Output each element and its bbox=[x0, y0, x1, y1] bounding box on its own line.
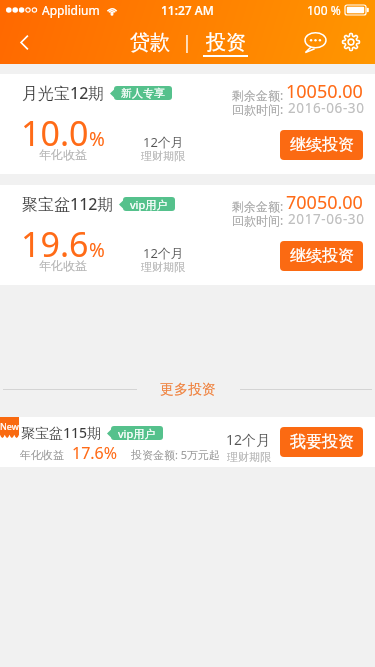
staticText: 2017-06-30 bbox=[288, 210, 365, 228]
staticText: 聚宝盆112期 bbox=[22, 193, 114, 215]
staticText: 理财期限 bbox=[141, 260, 185, 274]
staticText: 投资 bbox=[206, 30, 246, 55]
staticText: 11:27 AM bbox=[161, 2, 214, 18]
staticText: 12个月 bbox=[143, 244, 184, 262]
staticText: 2016-06-30 bbox=[288, 99, 365, 117]
staticText: 10050.00 bbox=[286, 79, 363, 104]
staticText: 年化收益 bbox=[39, 258, 87, 273]
button[interactable]: 月光宝12期 bbox=[0, 74, 375, 174]
button[interactable]: 贷款 bbox=[130, 29, 170, 54]
staticText: % bbox=[89, 237, 105, 263]
staticText: vip用户 bbox=[118, 426, 156, 440]
staticText: 12个月 bbox=[226, 430, 271, 449]
staticText: 剩余金额: bbox=[232, 87, 284, 103]
button[interactable]: 聚宝盆115期 bbox=[0, 417, 375, 467]
staticText: 聚宝盆115期 bbox=[21, 423, 102, 442]
button[interactable]: 我要投资 bbox=[280, 427, 363, 457]
staticText: % bbox=[89, 126, 105, 152]
staticText: 理财期限 bbox=[227, 450, 271, 464]
staticText: 新人专享 bbox=[121, 86, 165, 100]
button[interactable]: 继续投资 bbox=[280, 130, 363, 160]
staticText: 70050.00 bbox=[286, 190, 363, 215]
staticText: 投资金额: 5万元起 bbox=[131, 447, 221, 462]
button[interactable]: 继续投资 bbox=[280, 241, 363, 271]
staticText: | bbox=[182, 30, 192, 55]
staticText: 回款时间: bbox=[232, 212, 284, 228]
staticText: 剩余金额: bbox=[232, 198, 284, 214]
staticText: 回款时间: bbox=[232, 101, 284, 117]
button[interactable]: 聚宝盆112期 bbox=[0, 185, 375, 285]
staticText: 年化收益 bbox=[20, 448, 64, 462]
staticText: 10.0 bbox=[21, 110, 89, 156]
button[interactable]: Settings bbox=[333, 24, 369, 60]
staticText: 贷款 bbox=[130, 30, 170, 55]
staticText: 继续投资 bbox=[290, 135, 354, 155]
staticText: vip用户 bbox=[130, 197, 168, 211]
button[interactable]: Back bbox=[6, 24, 42, 60]
staticText: 年化收益 bbox=[39, 147, 87, 162]
staticText: 继续投资 bbox=[290, 246, 354, 266]
staticText: 理财期限 bbox=[141, 149, 185, 163]
button[interactable]: Messages bbox=[297, 24, 333, 60]
staticText: New bbox=[0, 420, 19, 432]
staticText: 100 % bbox=[307, 2, 341, 18]
button[interactable]: 投资 bbox=[203, 29, 248, 57]
staticText: 19.6 bbox=[21, 221, 89, 267]
staticText: Applidium bbox=[42, 2, 100, 18]
staticText: 更多投资 bbox=[160, 381, 216, 397]
staticText: 我要投资 bbox=[290, 432, 354, 452]
staticText: 12个月 bbox=[143, 133, 184, 151]
staticText: 17.6% bbox=[72, 442, 118, 464]
staticText: 月光宝12期 bbox=[22, 82, 105, 104]
